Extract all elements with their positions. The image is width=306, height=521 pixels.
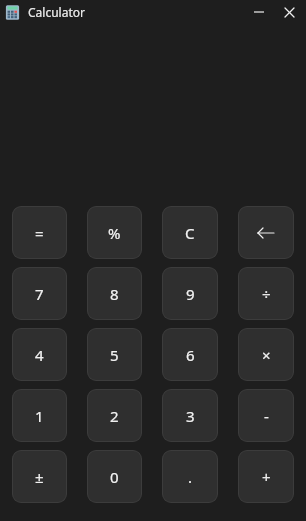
staticText: +: [262, 467, 271, 487]
button[interactable]: 4: [12, 328, 67, 381]
button[interactable]: ±: [12, 450, 67, 503]
button[interactable]: %: [87, 206, 142, 259]
button[interactable]: 7: [12, 267, 67, 320]
button[interactable]: C: [162, 206, 218, 259]
staticText: 4: [35, 345, 44, 365]
button[interactable]: 5: [87, 328, 142, 381]
staticText: %: [108, 223, 121, 243]
staticText: C: [185, 223, 195, 243]
button[interactable]: ×: [238, 328, 294, 381]
button[interactable]: Minimize: [244, 0, 274, 24]
staticText: 6: [186, 345, 195, 365]
button[interactable]: -: [238, 389, 294, 442]
staticText: ÷: [262, 284, 271, 304]
button[interactable]: 9: [162, 267, 218, 320]
button[interactable]: =: [12, 206, 67, 259]
staticText: 5: [110, 345, 119, 365]
staticText: 3: [186, 406, 195, 426]
staticText: 2: [110, 406, 119, 426]
button[interactable]: 0: [87, 450, 142, 503]
staticText: 0: [110, 467, 119, 487]
staticText: 9: [186, 284, 195, 304]
staticText: 8: [110, 284, 119, 304]
staticText: ±: [35, 467, 44, 487]
staticText: .: [188, 467, 193, 487]
button[interactable]: Backspace: [238, 206, 294, 259]
button[interactable]: 8: [87, 267, 142, 320]
staticText: ×: [262, 345, 271, 365]
button[interactable]: Close: [274, 0, 304, 24]
button[interactable]: +: [238, 450, 294, 503]
button[interactable]: 1: [12, 389, 67, 442]
staticText: Calculator: [28, 4, 85, 20]
button[interactable]: ÷: [238, 267, 294, 320]
staticText: -: [264, 406, 269, 426]
staticText: =: [35, 223, 44, 243]
staticText: 1: [35, 406, 44, 426]
button[interactable]: .: [162, 450, 218, 503]
staticText: 7: [35, 284, 44, 304]
button[interactable]: 2: [87, 389, 142, 442]
button[interactable]: 6: [162, 328, 218, 381]
button[interactable]: 3: [162, 389, 218, 442]
